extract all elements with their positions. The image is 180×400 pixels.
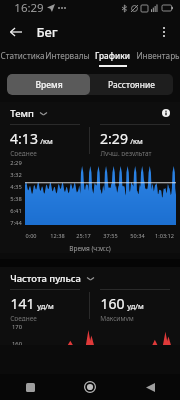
staticText: 12:38 xyxy=(50,232,65,240)
button[interactable]: Расстояние xyxy=(90,74,173,95)
button[interactable]: Интервалы xyxy=(45,48,90,70)
button[interactable]: Home xyxy=(60,374,120,400)
staticText: /км xyxy=(130,136,143,146)
staticText: 1:03:12 xyxy=(155,232,174,240)
staticText: 37:55 xyxy=(103,232,118,240)
button[interactable]: Инвентарь xyxy=(135,48,180,70)
staticText: Максимум xyxy=(100,314,134,321)
button[interactable]: Время xyxy=(7,74,90,95)
staticText: 160 xyxy=(100,294,125,313)
button[interactable]: Частота пульса xyxy=(10,272,94,285)
staticText: Среднее xyxy=(10,149,37,156)
staticText: Графики xyxy=(95,50,130,61)
button[interactable]: More options xyxy=(152,20,176,44)
staticText: Интервалы xyxy=(45,50,90,61)
staticText: Частота пульса xyxy=(10,272,81,285)
button[interactable]: Info xyxy=(158,105,174,121)
staticText: 4:35 xyxy=(10,183,22,191)
staticText: Бег xyxy=(36,23,58,41)
staticText: Время xyxy=(35,79,63,91)
staticText: Расстояние xyxy=(108,79,155,91)
staticText: 141 xyxy=(10,294,35,313)
staticText: уд/м xyxy=(37,301,54,311)
staticText: 25:17 xyxy=(76,232,91,240)
button[interactable]: Графики xyxy=(90,48,135,70)
staticText: уд/м xyxy=(127,301,144,311)
button[interactable]: Статистика xyxy=(0,48,45,70)
staticText: Статистика xyxy=(0,50,45,61)
staticText: Инвентарь xyxy=(136,50,180,61)
staticText: 7:44 xyxy=(10,219,22,227)
button[interactable]: Back xyxy=(4,20,28,44)
staticText: 16:29 xyxy=(14,0,44,16)
staticText: Время (ч:м:с) xyxy=(69,244,111,253)
staticText: 0:00 xyxy=(25,232,37,240)
staticText: 160 xyxy=(12,340,22,345)
staticText: Среднее xyxy=(10,314,37,321)
button[interactable]: Back xyxy=(120,374,180,400)
staticText: Темп xyxy=(10,107,34,120)
staticText: 2:29 xyxy=(10,159,22,167)
staticText: 2:29 xyxy=(100,129,128,148)
staticText: /км xyxy=(40,136,53,146)
staticText: Лучш. результат xyxy=(100,149,152,156)
staticText: 6:41 xyxy=(10,207,22,215)
staticText: 4:13 xyxy=(10,129,38,148)
button[interactable]: Recents xyxy=(0,374,60,400)
staticText: 170 xyxy=(12,323,22,331)
staticText: 3:32 xyxy=(10,171,22,179)
button[interactable]: Темп xyxy=(10,107,47,120)
staticText: 5:38 xyxy=(10,195,22,203)
staticText: 50:34 xyxy=(130,232,145,240)
